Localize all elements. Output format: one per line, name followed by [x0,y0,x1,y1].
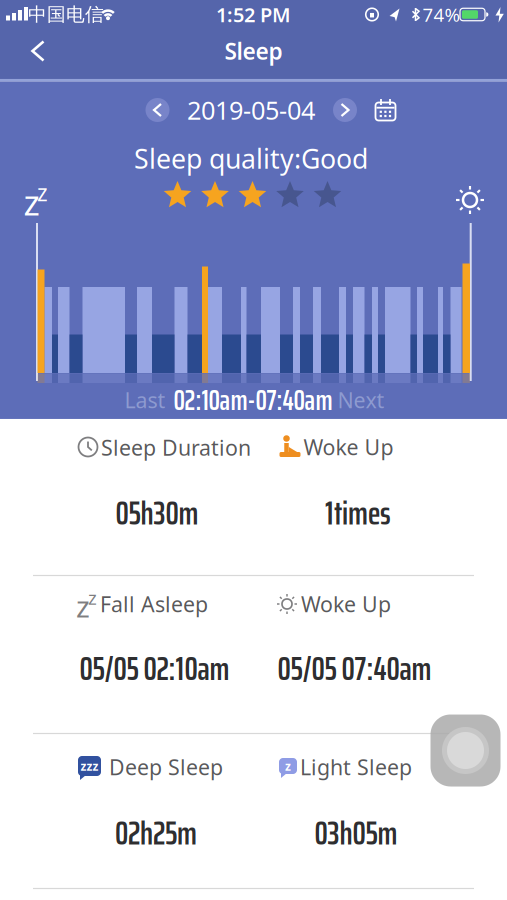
staticText: Sleep Duration [101,433,251,462]
staticText: 05/05 07:40am [277,642,431,695]
staticText: Last [124,386,165,414]
staticText: z [23,179,39,225]
staticText: 02:10am-07:40am [173,377,332,422]
button[interactable]: AssistiveTouch [430,714,500,786]
staticText: Light Sleep [300,753,412,781]
staticText: 2019-05-04 [187,93,315,127]
staticText: 74% [422,2,460,27]
staticText: Deep Sleep [109,753,223,781]
button[interactable]: Back [20,29,55,72]
staticText: Next [337,386,384,414]
staticText: 05h30m [115,487,198,539]
staticText: Woke Up [303,433,393,461]
staticText: Fall Asleep [100,590,208,618]
staticText: Sleep [224,36,282,66]
button[interactable]: Calendar [374,98,396,121]
button[interactable]: Next day [333,98,357,122]
staticText: z [37,177,48,207]
staticText: 1:52 PM [216,1,291,28]
button[interactable]: Previous day [145,98,169,122]
staticText: 02h25m [115,807,197,859]
staticText: z [76,586,90,625]
staticText: zzz [80,758,98,774]
staticText: z [88,585,97,610]
button[interactable]: Next [333,382,388,418]
staticText: Woke Up [301,590,391,618]
staticText: 05/05 02:10am [79,642,229,695]
staticText: 中国电信 [28,3,104,26]
staticText: z [285,758,291,774]
staticText: 1times [325,487,391,539]
staticText: 03h05m [314,807,397,859]
staticText: Sleep quality:Good [134,141,368,176]
button[interactable]: Last [120,382,169,418]
